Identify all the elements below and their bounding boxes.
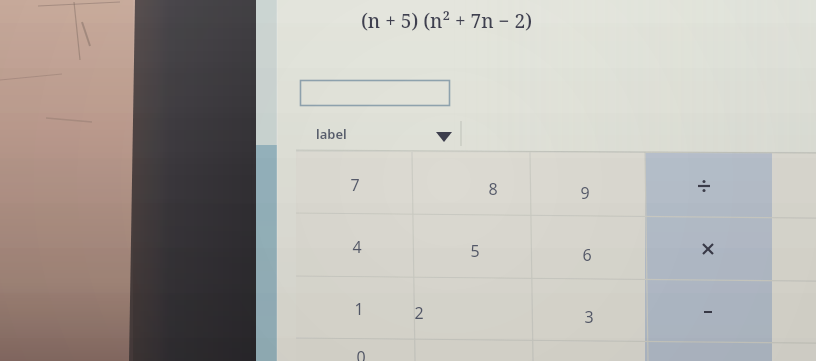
button[interactable]: 7 (340, 172, 370, 198)
button[interactable]: 1 (344, 296, 374, 322)
staticText: 6 (582, 244, 592, 266)
button[interactable]: 2 (404, 300, 434, 326)
button[interactable]: label (296, 120, 464, 148)
staticText: 4 (352, 236, 362, 258)
button[interactable]: 6 (572, 242, 602, 268)
staticText: 7 (350, 174, 360, 196)
staticText: 9 (580, 182, 590, 204)
button[interactable]: Answer input field (300, 80, 450, 106)
button[interactable]: 4 (342, 234, 372, 260)
button[interactable]: Multiply (694, 235, 722, 263)
button[interactable]: 5 (460, 238, 490, 264)
staticText: 5 (470, 240, 480, 262)
button[interactable]: 8 (478, 176, 508, 202)
staticText: 2 (414, 302, 424, 324)
staticText: 1 (354, 298, 364, 320)
staticText: label (316, 125, 347, 143)
staticText: (n + 5) (n² + 7n − 2) (361, 8, 532, 34)
staticText: 8 (488, 178, 498, 200)
button[interactable]: 3 (574, 304, 604, 330)
staticText: 0 (356, 346, 366, 361)
button[interactable]: Minus (694, 298, 722, 326)
button[interactable]: Divide (690, 172, 718, 200)
staticText: 3 (584, 306, 594, 328)
button[interactable]: 0 (346, 344, 376, 361)
button[interactable]: 9 (570, 180, 600, 206)
